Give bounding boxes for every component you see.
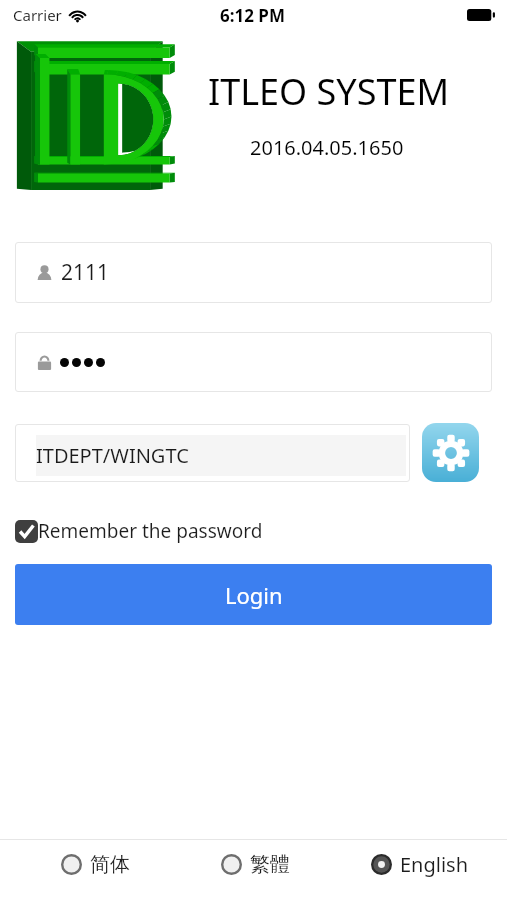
button[interactable] xyxy=(15,332,492,392)
staticText: Carrier xyxy=(13,5,62,25)
staticText: Remember the password xyxy=(38,518,263,544)
staticText: ITLEO SYSTEM xyxy=(208,67,450,116)
staticText: Login xyxy=(225,580,283,610)
staticText: English xyxy=(400,851,469,878)
button[interactable]: Remember the password xyxy=(15,518,263,544)
button[interactable]: English xyxy=(371,851,469,878)
staticText: 2111 xyxy=(61,258,110,287)
staticText: ITDEPT/WINGTC xyxy=(36,442,189,469)
button[interactable]: 2111 xyxy=(15,242,492,303)
staticText: 繁體 xyxy=(250,852,290,877)
staticText: 6:12 PM xyxy=(220,4,285,27)
button[interactable]: ITDEPT/WINGTC xyxy=(15,424,410,482)
button[interactable]: Settings xyxy=(422,423,479,482)
staticText: 简体 xyxy=(90,852,130,877)
staticText: 2016.04.05.1650 xyxy=(250,134,404,161)
button[interactable]: 简体 xyxy=(61,852,130,877)
button[interactable]: 繁體 xyxy=(221,852,290,877)
button[interactable]: Login xyxy=(15,564,492,625)
